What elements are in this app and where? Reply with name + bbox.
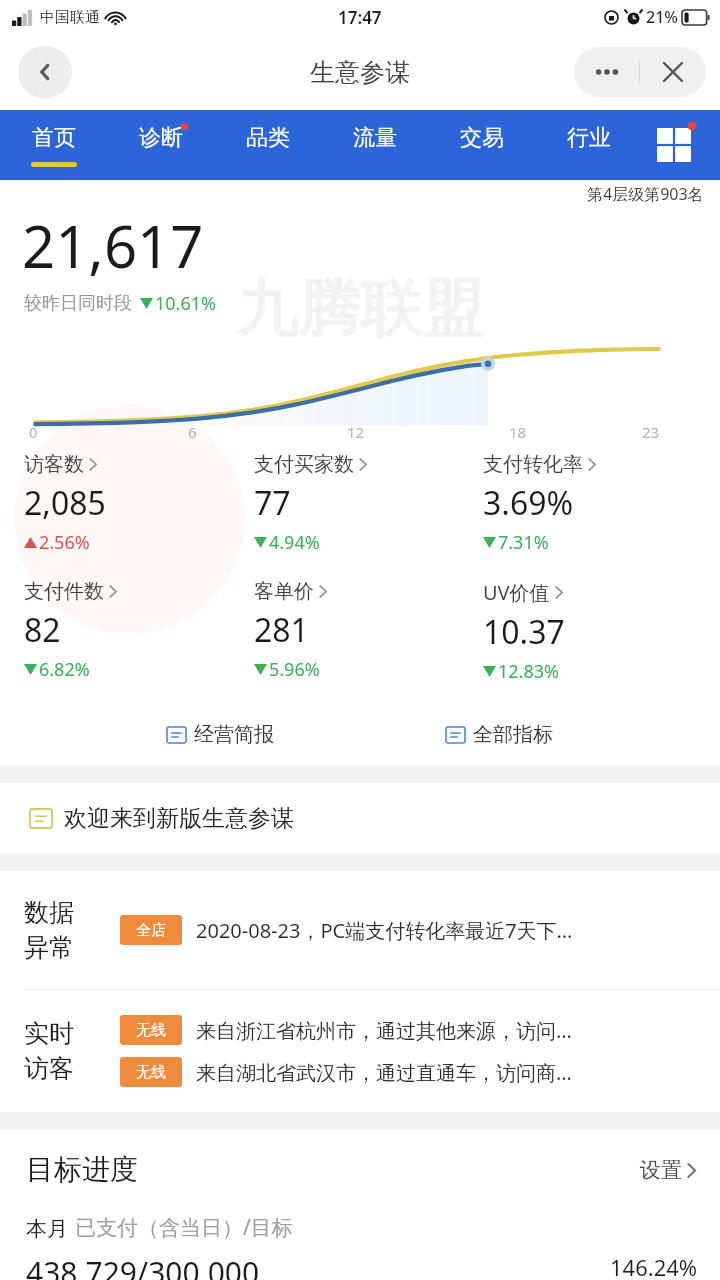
staticText: 21% bbox=[646, 6, 678, 28]
staticText: 3.69% bbox=[483, 481, 574, 525]
button[interactable]: Back bbox=[18, 46, 72, 98]
staticText: 17:47 bbox=[338, 6, 382, 29]
staticText: 九腾联盟 bbox=[236, 270, 484, 348]
button[interactable]: 支付转化率 bbox=[483, 452, 712, 555]
staticText: 流量 bbox=[353, 124, 397, 152]
button[interactable]: 支付件数 bbox=[24, 579, 254, 682]
staticText: 支付转化率 bbox=[483, 452, 583, 477]
staticText: 82 bbox=[24, 608, 61, 652]
button[interactable]: 经营简报 bbox=[161, 718, 280, 751]
button[interactable]: 诊断 bbox=[107, 110, 214, 180]
staticText: 7.31% bbox=[498, 530, 549, 555]
button[interactable]: More options bbox=[574, 47, 639, 97]
staticText: 欢迎来到新版生意参谋 bbox=[64, 804, 294, 833]
staticText: 诊断 bbox=[139, 124, 183, 152]
staticText: 10.61% bbox=[155, 291, 216, 316]
staticText: 支付买家数 bbox=[254, 452, 354, 477]
staticText: 品类 bbox=[246, 124, 290, 152]
staticText: 全店 bbox=[136, 921, 166, 940]
staticText: 本月 bbox=[26, 1216, 68, 1242]
staticText: 支付件数 bbox=[24, 579, 104, 604]
staticText: 已支付（含当日）/目标 bbox=[75, 1213, 293, 1242]
staticText: 6.82% bbox=[39, 657, 90, 682]
staticText: 行业 bbox=[567, 124, 611, 152]
staticText: 中国联通 bbox=[40, 8, 100, 27]
staticText: 18 bbox=[509, 422, 527, 442]
staticText: 来自湖北省武汉市，通过直通车，访问商… bbox=[196, 1059, 572, 1086]
staticText: 访客 bbox=[24, 1053, 74, 1084]
button[interactable]: 全部指标 bbox=[440, 718, 559, 751]
staticText: 5.96% bbox=[269, 657, 320, 682]
button[interactable]: 交易 bbox=[428, 110, 535, 180]
staticText: 0 bbox=[29, 422, 38, 442]
staticText: 21,617 bbox=[22, 206, 204, 285]
staticText: 数据 bbox=[24, 897, 74, 928]
staticText: 首页 bbox=[32, 124, 76, 152]
button[interactable]: Close bbox=[640, 47, 706, 97]
staticText: 客单价 bbox=[254, 579, 314, 604]
staticText: 77 bbox=[254, 481, 291, 525]
button[interactable]: 无线 bbox=[120, 1015, 572, 1045]
staticText: 访客数 bbox=[24, 452, 84, 477]
staticText: 6 bbox=[188, 422, 197, 442]
staticText: 4.94% bbox=[269, 530, 320, 555]
staticText: 438,729/300,000 bbox=[26, 1252, 260, 1280]
button[interactable]: 数据 bbox=[0, 871, 720, 989]
staticText: 10.37 bbox=[483, 610, 565, 654]
staticText: 第4层级第903名 bbox=[587, 183, 704, 205]
button[interactable]: 设置 bbox=[636, 1153, 700, 1187]
staticText: UV价值 bbox=[483, 579, 550, 606]
staticText: 2,085 bbox=[24, 481, 106, 525]
staticText: 2.56% bbox=[39, 530, 90, 555]
button[interactable]: All tools bbox=[650, 121, 698, 169]
staticText: 281 bbox=[254, 608, 309, 652]
button[interactable]: 访客数 bbox=[24, 452, 254, 555]
button[interactable]: 无线 bbox=[120, 1057, 572, 1087]
button[interactable]: 支付买家数 bbox=[254, 452, 483, 555]
staticText: 生意参谋 bbox=[310, 57, 410, 88]
staticText: 无线 bbox=[136, 1021, 166, 1040]
staticText: 实时 bbox=[24, 1018, 74, 1049]
staticText: 12.83% bbox=[498, 659, 559, 684]
staticText: 23 bbox=[642, 422, 660, 442]
button[interactable]: 流量 bbox=[321, 110, 428, 180]
button[interactable]: 首页 bbox=[0, 110, 107, 180]
staticText: 无线 bbox=[136, 1063, 166, 1082]
staticText: 较昨日同时段 bbox=[24, 292, 132, 315]
button[interactable]: 品类 bbox=[214, 110, 321, 180]
staticText: 设置 bbox=[640, 1157, 682, 1183]
button[interactable]: UV价值 bbox=[483, 579, 712, 684]
staticText: 12 bbox=[347, 422, 365, 442]
staticText: 经营简报 bbox=[194, 722, 274, 747]
button[interactable]: 行业 bbox=[535, 110, 642, 180]
staticText: 全部指标 bbox=[473, 722, 553, 747]
staticText: 交易 bbox=[460, 124, 504, 152]
staticText: 来自浙江省杭州市，通过其他来源，访问… bbox=[196, 1017, 572, 1044]
button[interactable]: 欢迎来到新版生意参谋 bbox=[0, 783, 720, 853]
staticText: 异常 bbox=[24, 932, 74, 963]
staticText: 146.24% bbox=[610, 1252, 698, 1280]
button[interactable]: 客单价 bbox=[254, 579, 483, 682]
staticText: 目标进度 bbox=[26, 1152, 138, 1187]
staticText: 2020-08-23，PC端支付转化率最近7天下… bbox=[196, 917, 573, 944]
